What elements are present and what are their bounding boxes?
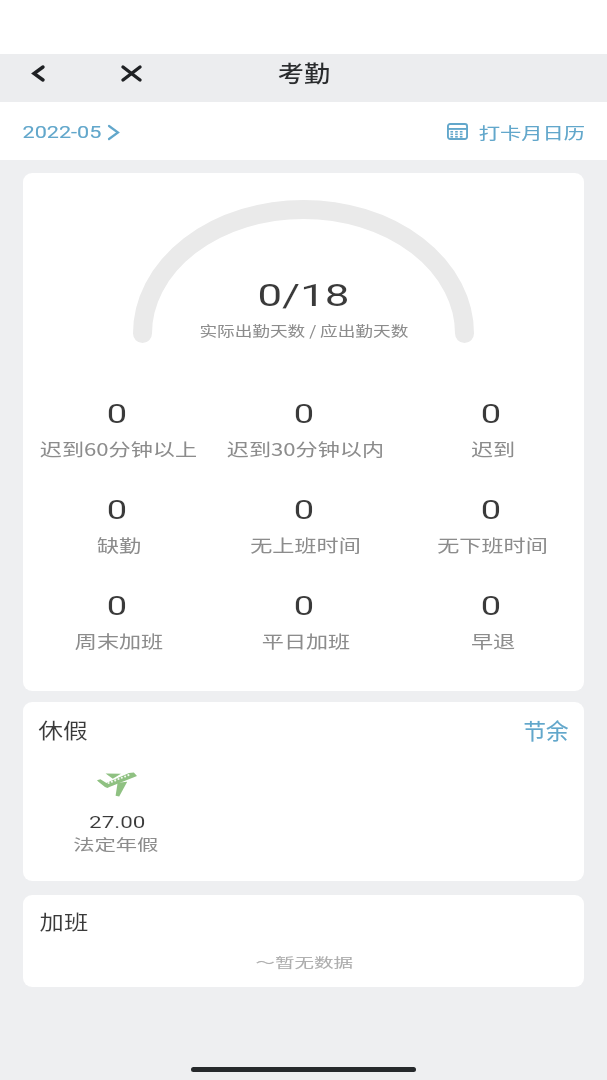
staticText: 加班 bbox=[40, 907, 88, 936]
button[interactable]: Back bbox=[19, 54, 57, 92]
staticText: 27.00 bbox=[89, 812, 146, 832]
staticText: 0 bbox=[107, 496, 128, 525]
staticText: 0 bbox=[107, 400, 128, 429]
button[interactable]: 节余 bbox=[524, 713, 569, 745]
staticText: 实际出勤天数 / 应出勤天数 bbox=[199, 320, 409, 340]
button[interactable]: 2022-05 bbox=[14, 110, 134, 152]
staticText: 0/18 bbox=[257, 276, 351, 314]
staticText: 休假 bbox=[38, 714, 88, 744]
staticText: 考勤 bbox=[278, 55, 330, 88]
staticText: 2022-05 bbox=[22, 122, 102, 142]
staticText: 0 bbox=[481, 496, 502, 525]
staticText: 0 bbox=[107, 592, 128, 621]
staticText: ～暂无数据 bbox=[255, 952, 354, 971]
staticText: 0 bbox=[481, 400, 502, 429]
staticText: 平日加班 bbox=[262, 628, 350, 653]
staticText: 早退 bbox=[471, 628, 515, 653]
staticText: 0 bbox=[294, 400, 315, 429]
staticText: 0 bbox=[294, 496, 315, 525]
staticText: 无上班时间 bbox=[250, 532, 361, 557]
staticText: 法定年假 bbox=[73, 833, 160, 855]
staticText: 打卡月日历 bbox=[479, 120, 586, 143]
staticText: 0 bbox=[294, 592, 315, 621]
staticText: 0 bbox=[481, 592, 502, 621]
staticText: 迟到 bbox=[471, 436, 515, 461]
staticText: 缺勤 bbox=[97, 532, 141, 557]
staticText: 迟到30分钟以内 bbox=[227, 436, 384, 461]
button[interactable]: Close bbox=[112, 54, 150, 92]
staticText: 周末加班 bbox=[75, 628, 163, 653]
staticText: 节余 bbox=[523, 713, 569, 745]
staticText: 无下班时间 bbox=[437, 532, 548, 557]
button[interactable]: 打卡月日历 bbox=[440, 110, 590, 150]
staticText: 迟到60分钟以上 bbox=[40, 436, 197, 461]
